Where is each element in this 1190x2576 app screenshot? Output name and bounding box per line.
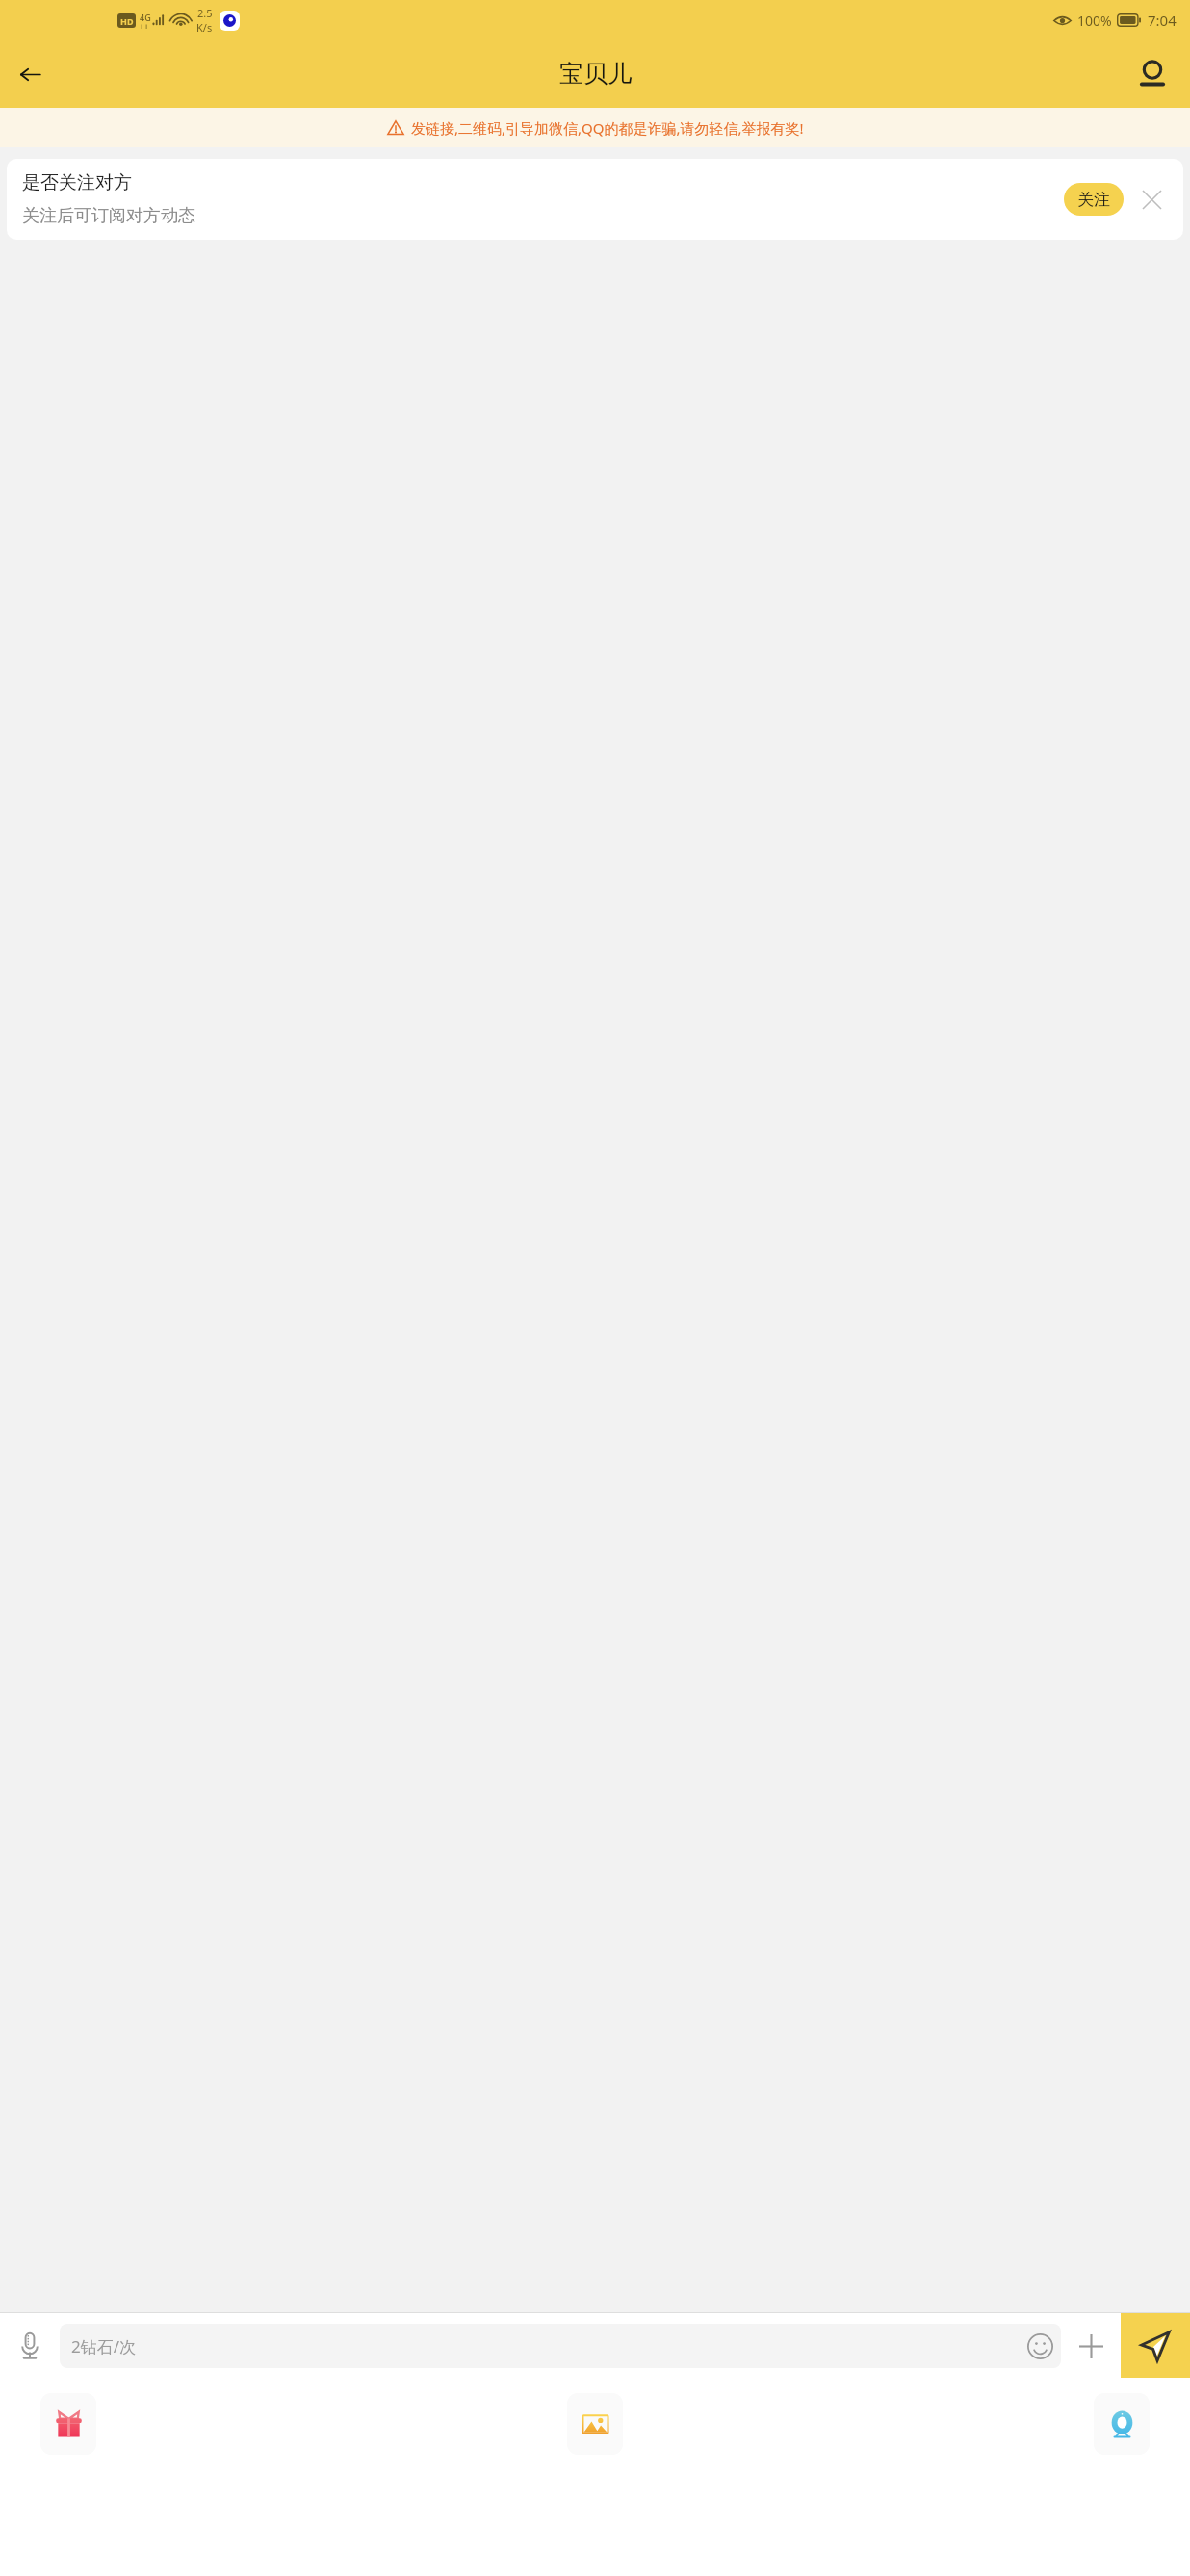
button[interactable]: 关注 bbox=[1064, 183, 1124, 216]
button[interactable]: Close bbox=[1131, 179, 1172, 219]
staticText: 关注 bbox=[1077, 190, 1110, 210]
button[interactable]: Gift bbox=[40, 2393, 96, 2455]
staticText: 关注后可订阅对方动态 bbox=[22, 205, 195, 227]
staticText: 是否关注对方 bbox=[22, 171, 132, 194]
button[interactable]: Profile bbox=[1128, 50, 1177, 98]
staticText: HD bbox=[120, 15, 134, 27]
staticText: 4G bbox=[140, 12, 151, 23]
button[interactable]: More bbox=[1061, 2316, 1121, 2376]
button[interactable]: Voice message bbox=[0, 2316, 60, 2376]
staticText: 2钻石/次 bbox=[71, 2335, 1019, 2357]
staticText: 7:04 bbox=[1148, 11, 1177, 30]
button[interactable]: Back bbox=[4, 48, 56, 100]
staticText: 发链接,二维码,引导加微信,QQ的都是诈骗,请勿轻信,举报有奖! bbox=[411, 118, 804, 138]
staticText: 100% bbox=[1077, 12, 1112, 30]
button[interactable]: 发链接,二维码,引导加微信,QQ的都是诈骗,请勿轻信,举报有奖! bbox=[0, 108, 1190, 147]
button[interactable]: Photo bbox=[567, 2393, 623, 2455]
staticText: 2.5 bbox=[197, 6, 213, 20]
staticText: 宝贝儿 bbox=[559, 59, 632, 89]
button[interactable]: 是否关注对方 bbox=[7, 159, 1183, 240]
staticText: K/s bbox=[196, 20, 213, 35]
button[interactable]: 2钻石/次 bbox=[60, 2324, 1061, 2368]
button[interactable]: Send bbox=[1121, 2313, 1190, 2378]
button[interactable]: Emoji bbox=[1019, 2325, 1061, 2367]
button[interactable]: Video call bbox=[1094, 2393, 1150, 2455]
